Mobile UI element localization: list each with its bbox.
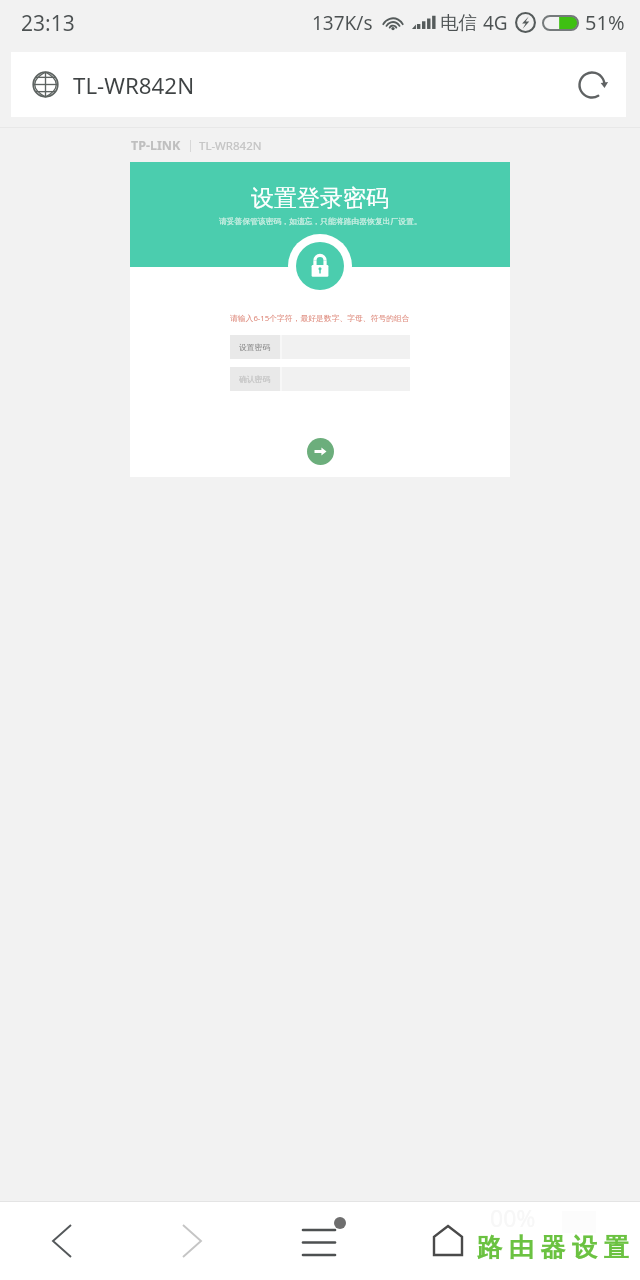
staticText: 请输入6-15个字符，最好是数字、字母、符号的组合 (230, 313, 410, 324)
staticText: 确认密码 (239, 374, 271, 384)
button[interactable]: Refresh (566, 59, 618, 111)
staticText: 路由器设置 (477, 1232, 636, 1263)
button[interactable]: Menu (285, 1201, 365, 1280)
button[interactable]: Back (22, 1201, 102, 1280)
button[interactable]: Forward (152, 1201, 232, 1280)
staticText: 137K/s (312, 10, 373, 36)
button[interactable]: Home (408, 1201, 488, 1280)
staticText: 23:13 (21, 9, 75, 38)
button[interactable]: 设置密码 (230, 335, 410, 359)
staticText: 4G (483, 10, 508, 36)
staticText: TP-LINK (131, 137, 181, 154)
staticText: TL-WR842N (199, 138, 262, 154)
button[interactable]: Next (307, 438, 334, 465)
staticText: 电信 (440, 11, 477, 34)
staticText: 51% (585, 9, 625, 36)
staticText: 设置登录密码 (251, 184, 389, 213)
staticText: 设置密码 (239, 342, 271, 352)
staticText: TL-WR842N (73, 70, 195, 100)
staticText: 请妥善保管该密码，如遗忘，只能将路由器恢复出厂设置。 (219, 216, 422, 226)
button[interactable]: Address bar (11, 52, 626, 117)
staticText: 00% (490, 1202, 536, 1233)
button[interactable]: 确认密码 (230, 367, 410, 391)
